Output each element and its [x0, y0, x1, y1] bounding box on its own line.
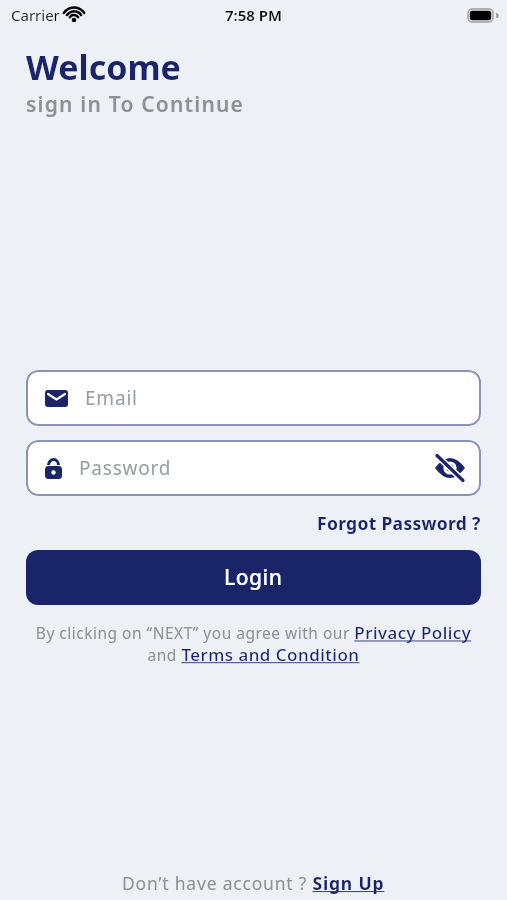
- staticText: Carrier: [11, 5, 60, 25]
- staticText: 7:58 PM: [225, 5, 282, 25]
- staticText: Welcome: [26, 44, 181, 90]
- staticText: Login: [224, 563, 283, 592]
- staticText: sign in To Continue: [26, 90, 245, 119]
- staticText: By clicking on “NEXT” you agree with our…: [26, 621, 481, 666]
- staticText: Forgot Password ?: [317, 511, 481, 535]
- staticText: Password: [79, 455, 172, 481]
- staticText: Email: [85, 385, 138, 411]
- staticText: Don’t have account ? Sign Up: [122, 871, 385, 895]
